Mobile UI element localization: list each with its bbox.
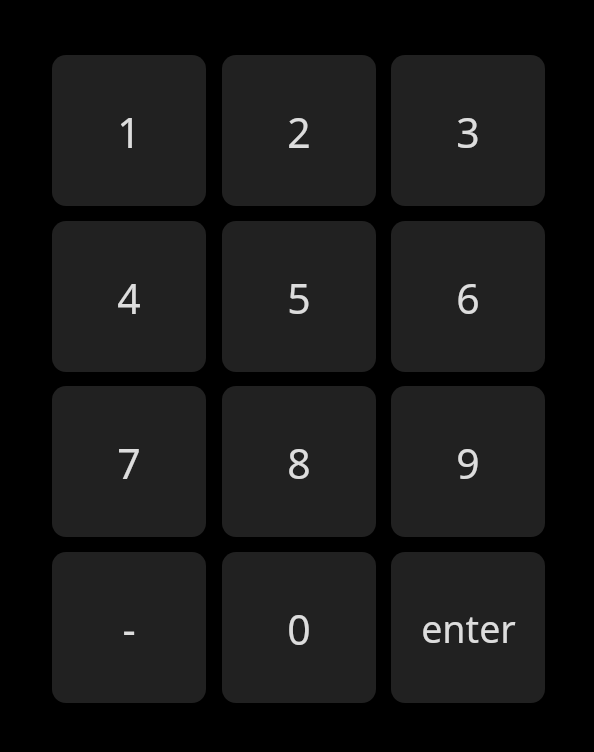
staticText: 5 — [287, 270, 311, 326]
staticText: 0 — [287, 601, 311, 657]
staticText: 1 — [117, 104, 141, 160]
staticText: - — [122, 601, 136, 657]
staticText: 3 — [456, 104, 480, 160]
button[interactable]: 0 — [222, 552, 376, 703]
button[interactable]: enter — [391, 552, 545, 703]
button[interactable]: 5 — [222, 221, 376, 372]
staticText: 4 — [117, 270, 141, 326]
staticText: 9 — [456, 435, 480, 491]
button[interactable]: 7 — [52, 386, 206, 537]
button[interactable]: - — [52, 552, 206, 703]
button[interactable]: 9 — [391, 386, 545, 537]
button[interactable]: 1 — [52, 55, 206, 206]
staticText: enter — [421, 603, 516, 654]
button[interactable]: 3 — [391, 55, 545, 206]
staticText: 7 — [117, 435, 141, 491]
button[interactable]: 4 — [52, 221, 206, 372]
staticText: 6 — [456, 270, 480, 326]
button[interactable]: 6 — [391, 221, 545, 372]
staticText: 8 — [287, 435, 311, 491]
staticText: 2 — [287, 104, 311, 160]
button[interactable]: 2 — [222, 55, 376, 206]
button[interactable]: 8 — [222, 386, 376, 537]
